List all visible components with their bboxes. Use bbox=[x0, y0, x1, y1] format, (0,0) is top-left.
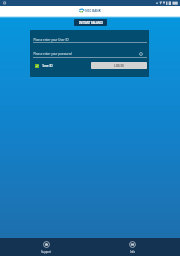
staticText: Support bbox=[41, 250, 51, 254]
staticText: LOG IN bbox=[114, 64, 124, 68]
button[interactable]: Support bbox=[33, 239, 59, 254]
button[interactable]: INSTANT BALANCE bbox=[74, 19, 107, 26]
staticText: Info bbox=[130, 250, 135, 254]
button[interactable]: Show password bbox=[139, 52, 143, 56]
button[interactable]: LOG IN bbox=[91, 62, 147, 69]
staticText: INSTANT BALANCE bbox=[79, 21, 103, 25]
staticText: Please enter your password bbox=[33, 52, 72, 56]
staticText: Please enter your User ID bbox=[33, 38, 69, 42]
staticText: Save ID bbox=[42, 64, 53, 68]
staticText: NCC BANK bbox=[85, 9, 101, 13]
button[interactable]: Info bbox=[119, 239, 145, 254]
button[interactable]: Save ID bbox=[35, 64, 53, 68]
